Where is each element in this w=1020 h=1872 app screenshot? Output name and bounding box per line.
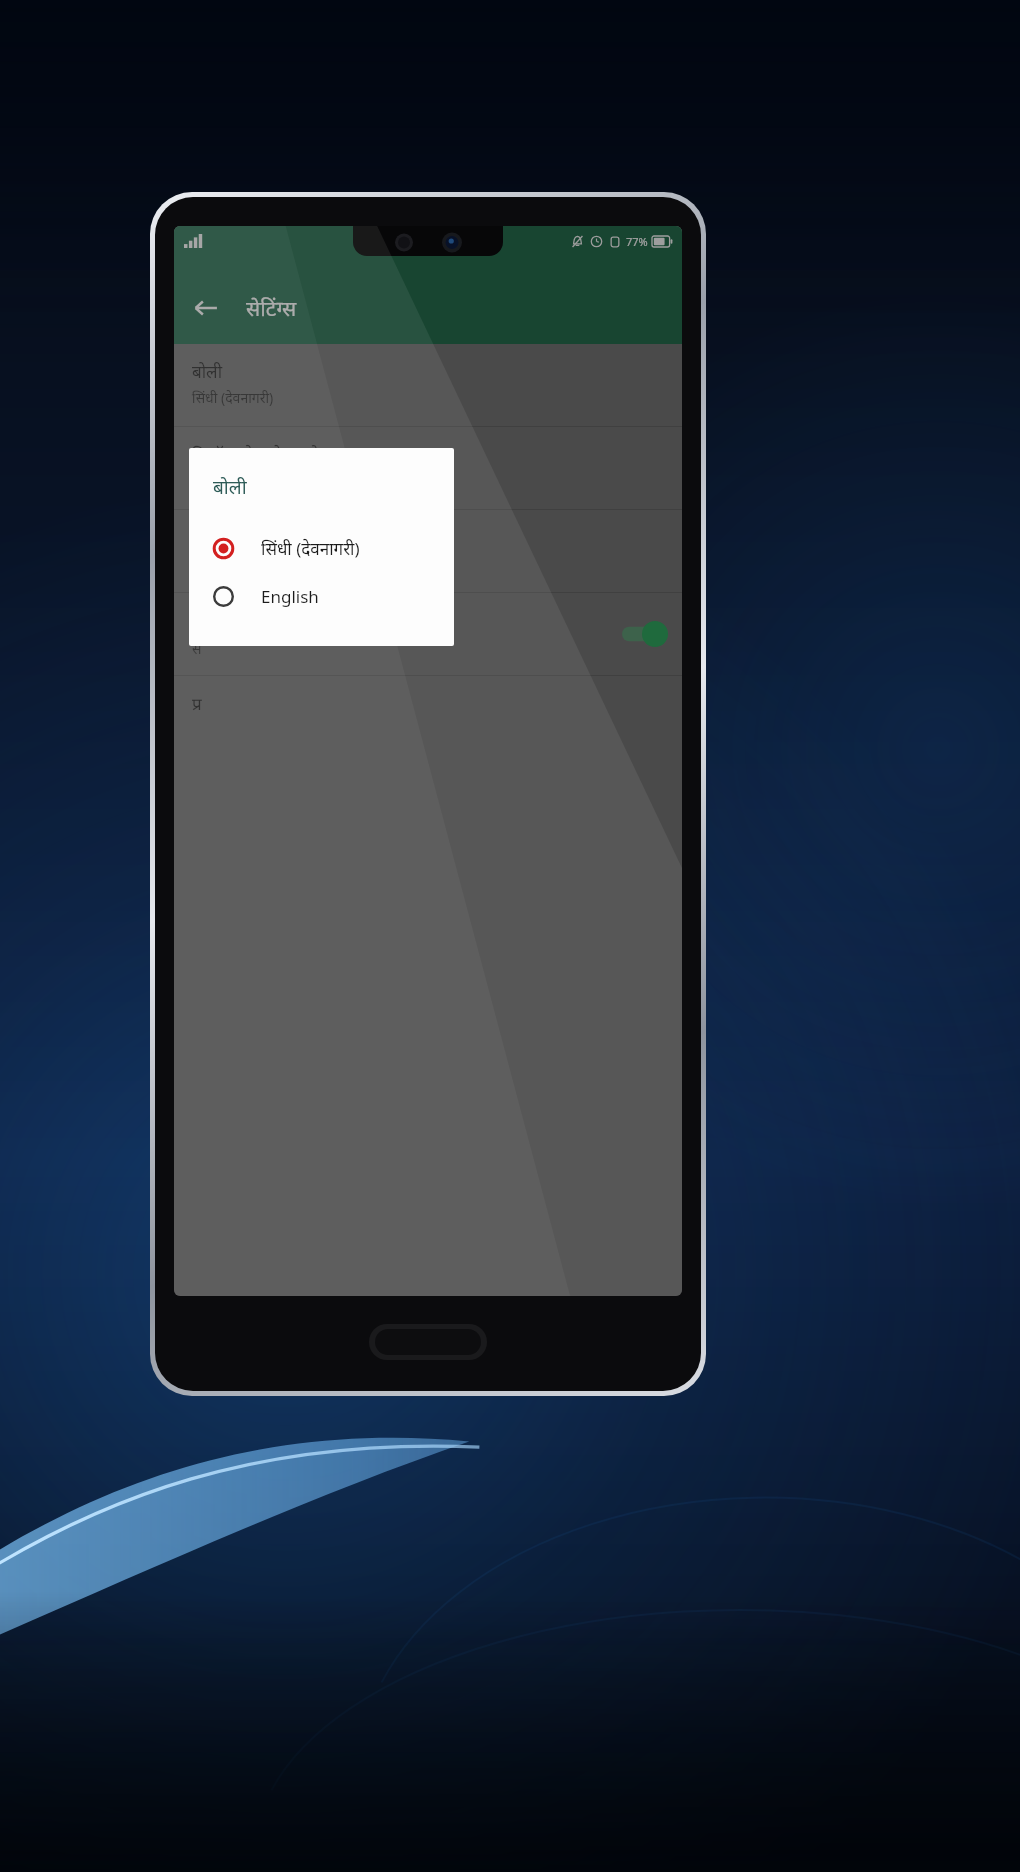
staticText: बोली [213, 474, 247, 500]
button[interactable]: बोली [174, 344, 682, 426]
button[interactable]: Back [182, 284, 230, 332]
staticText: 77% [626, 234, 648, 249]
staticText: कैलेंडर [192, 471, 226, 490]
staticText: English [261, 585, 319, 608]
button[interactable]: प्र [174, 676, 682, 758]
staticText: सिंधी (देवनागरी) [261, 537, 360, 560]
staticText: सिंधी (देवनागरी) [192, 388, 274, 407]
staticText: सं [192, 639, 202, 658]
button[interactable]: डिफ़ॉल्ट पेज सेट करो [174, 427, 682, 509]
staticText: सेटिंग्स [246, 294, 297, 323]
staticText: बोली [192, 360, 223, 383]
staticText: रिमाईंडर् जो वक्त [192, 526, 297, 549]
button[interactable]: रिमाईंडर् जो वक्त [174, 510, 682, 592]
button[interactable]: ऐ [174, 593, 682, 675]
staticText: प्र [192, 692, 202, 715]
button[interactable]: English [189, 572, 454, 620]
button[interactable]: Toggle [622, 621, 668, 647]
button[interactable]: सिंधी (देवनागरी) [189, 524, 454, 572]
staticText: डिफ़ॉल्ट पेज सेट करो [192, 443, 319, 466]
